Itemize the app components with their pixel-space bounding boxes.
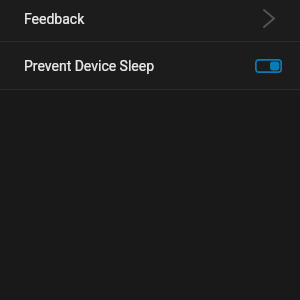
button[interactable]: Open Feedback: [264, 10, 274, 27]
staticText: Prevent Device Sleep: [24, 58, 155, 74]
staticText: Feedback: [24, 11, 85, 27]
button[interactable]: Prevent Device Sleep, on: [255, 59, 282, 73]
button[interactable]: Feedback: [0, 0, 300, 41]
button[interactable]: Prevent Device Sleep: [0, 42, 300, 89]
